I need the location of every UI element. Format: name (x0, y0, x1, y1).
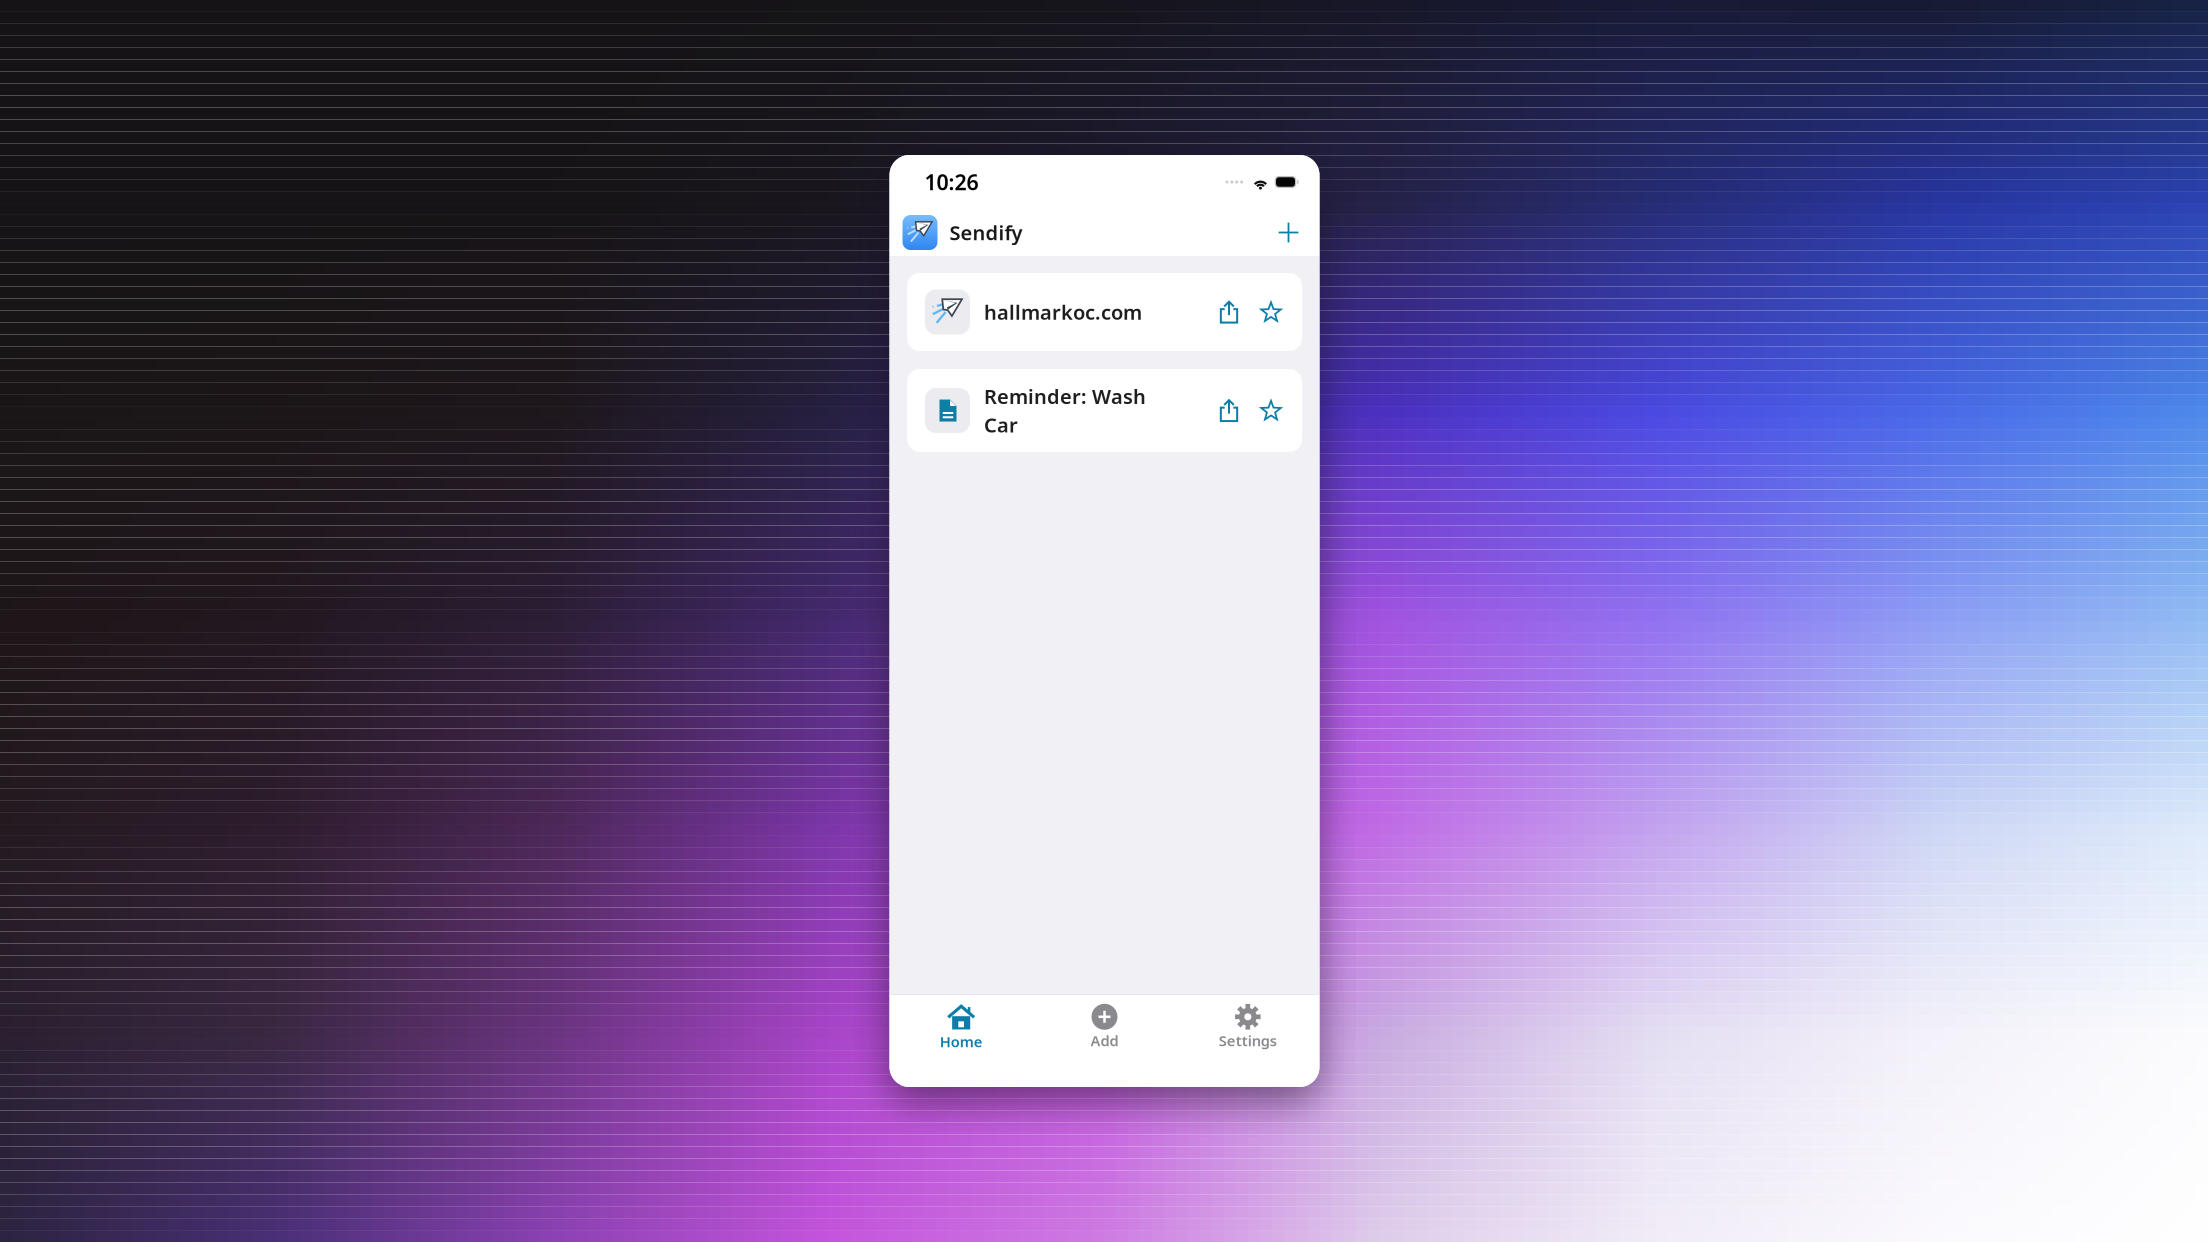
staticText: 10:26 (924, 168, 978, 196)
button[interactable]: Share (1208, 386, 1250, 434)
button[interactable]: Share (1208, 288, 1250, 336)
staticText: Home (940, 1032, 983, 1051)
button[interactable]: Favourite (1250, 386, 1292, 434)
button[interactable]: Add (1266, 210, 1310, 254)
button[interactable]: Favourite (1250, 288, 1292, 336)
button[interactable]: Home (889, 995, 1033, 1058)
staticText: Reminder: Wash (984, 383, 1146, 409)
button[interactable]: Add (1033, 995, 1176, 1058)
staticText: Car (984, 411, 1018, 438)
staticText: Settings (1219, 1031, 1277, 1050)
staticText: Add (1090, 1031, 1118, 1050)
staticText: Sendify (949, 219, 1022, 246)
staticText: hallmarkoc.com (984, 299, 1142, 325)
button[interactable]: Settings (1176, 995, 1319, 1058)
